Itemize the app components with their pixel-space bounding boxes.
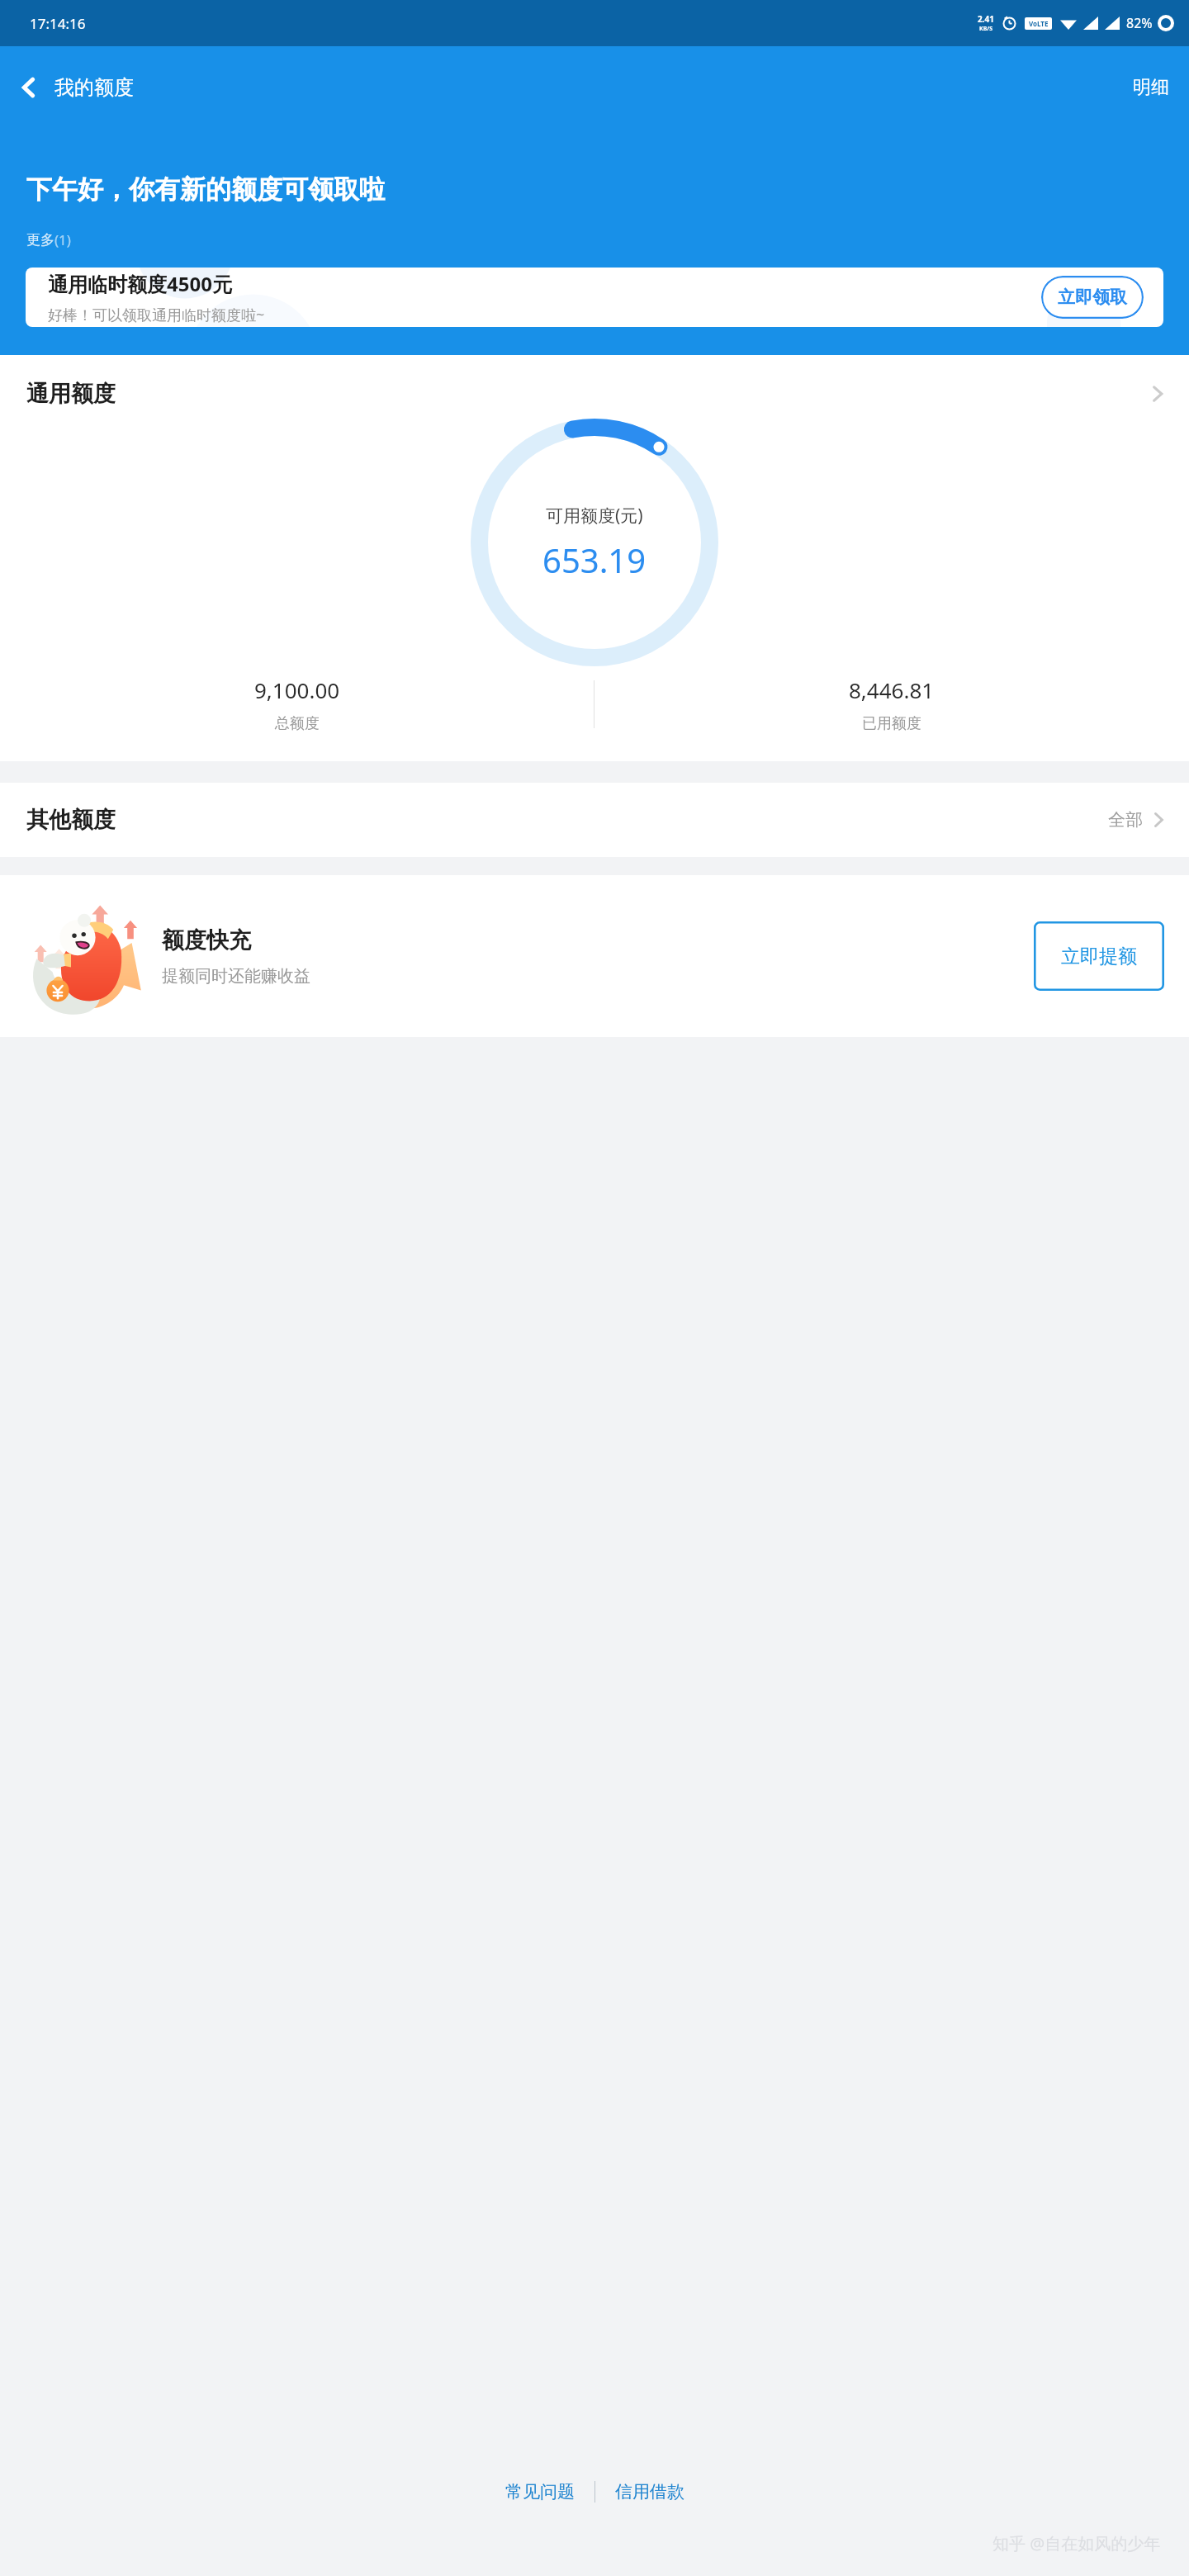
button[interactable]: 通用额度 <box>0 355 1189 414</box>
staticText: 立即领取 <box>1058 286 1127 308</box>
staticText: 常见问题 <box>505 2481 575 2503</box>
staticText: 额度快充 <box>162 926 251 954</box>
staticText: 653.19 <box>542 537 647 582</box>
other: Back <box>18 77 40 98</box>
staticText: VoLTE <box>1029 19 1049 28</box>
staticText: 2.41 <box>978 13 994 25</box>
button[interactable]: 更多 <box>26 230 71 249</box>
staticText: 17:14:16 <box>30 14 86 33</box>
staticText: 好棒！可以领取通用临时额度啦~ <box>48 305 265 325</box>
staticText: 下午好，你有新的额度可领取啦 <box>26 173 385 206</box>
staticText: 总额度 <box>275 714 320 733</box>
staticText: 明细 <box>1133 76 1169 99</box>
staticText: 9,100.00 <box>254 675 340 704</box>
button[interactable]: 信用借款 <box>607 2478 693 2506</box>
staticText: 提额同时还能赚收益 <box>162 966 310 987</box>
staticText: 82% <box>1126 14 1153 32</box>
staticText: 我的额度 <box>54 75 134 100</box>
staticText: 通用额度 <box>26 380 116 408</box>
button[interactable]: 额度快充 <box>0 875 1189 1037</box>
staticText: 通用临时额度4500元 <box>48 270 232 297</box>
button[interactable]: 其他额度 <box>0 783 1189 857</box>
staticText: 全部 <box>1108 809 1143 831</box>
staticText: 8,446.81 <box>849 675 935 704</box>
staticText: 其他额度 <box>26 806 116 834</box>
button[interactable]: 明细 <box>1113 66 1189 109</box>
button[interactable]: 通用临时额度4500元 <box>26 268 1163 327</box>
button[interactable]: 立即领取 <box>1041 276 1144 319</box>
staticText: 立即提额 <box>1061 945 1137 968</box>
staticText: KB/S <box>979 25 993 33</box>
staticText: (1) <box>54 230 71 249</box>
button[interactable]: 常见问题 <box>497 2478 583 2506</box>
staticText: 已用额度 <box>862 714 921 733</box>
staticText: 知乎 @自在如风的少年 <box>992 2532 1161 2555</box>
staticText: 信用借款 <box>615 2481 685 2503</box>
staticText: 可用额度(元) <box>546 504 643 528</box>
button[interactable]: 立即提额 <box>1034 921 1164 991</box>
button[interactable]: Back <box>0 69 147 107</box>
staticText: 更多 <box>26 231 54 249</box>
